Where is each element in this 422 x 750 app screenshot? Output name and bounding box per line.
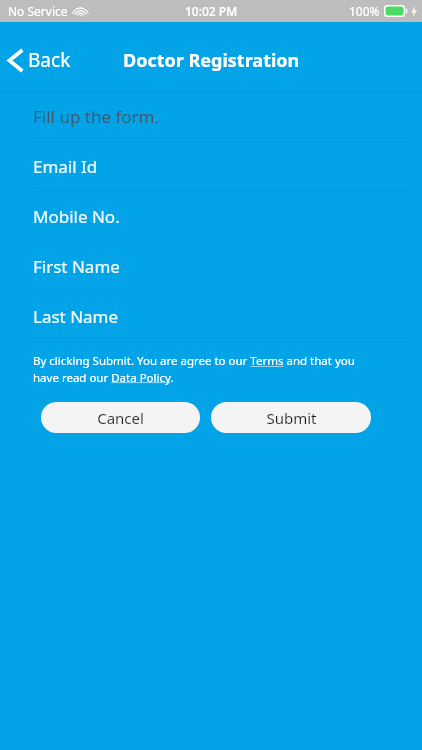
staticText: Mobile No. (33, 205, 120, 228)
staticText: First Name (33, 255, 120, 278)
staticText: 10:02 PM (185, 3, 238, 19)
staticText: Last Name (33, 305, 119, 328)
staticText: Cancel (97, 408, 144, 428)
staticText: Email Id (33, 155, 98, 178)
staticText: Doctor Registration (123, 48, 300, 73)
staticText: Submit (266, 408, 317, 428)
staticText: 100% (349, 3, 380, 19)
button[interactable]: Back (0, 41, 81, 79)
button[interactable]: Submit (211, 402, 371, 433)
button[interactable]: Cancel (41, 402, 200, 433)
other: Back (8, 50, 22, 71)
staticText: Back (28, 47, 71, 73)
staticText: By clicking Submit. You are agree to our… (33, 353, 382, 385)
staticText: Fill up the form. (33, 105, 160, 128)
staticText: No Service (8, 3, 68, 19)
